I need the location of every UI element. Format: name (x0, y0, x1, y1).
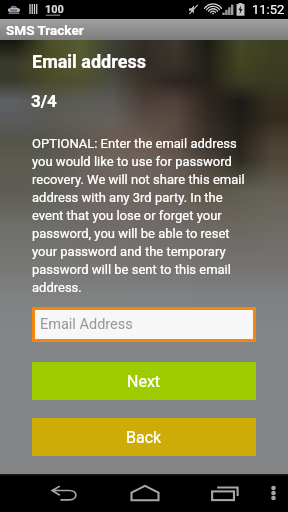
button[interactable]: Home (110, 474, 180, 512)
button[interactable]: Recent apps (190, 474, 260, 512)
button[interactable]: Back (28, 474, 100, 512)
button[interactable]: More options (260, 474, 288, 512)
button[interactable]: Next (32, 362, 256, 400)
staticText: 11:52 (252, 2, 285, 17)
staticText: SMS Tracker (6, 22, 84, 38)
staticText: 100 (45, 3, 64, 16)
staticText: Next (127, 372, 161, 391)
staticText: 3/4 (31, 91, 57, 111)
staticText: Email Address (40, 316, 133, 333)
staticText: Back (126, 428, 162, 447)
button[interactable]: Back (32, 418, 256, 456)
staticText: OPTIONAL: Enter the email address you wo… (32, 136, 256, 295)
button[interactable]: Email Address (32, 307, 256, 342)
staticText: Email address (32, 51, 146, 72)
